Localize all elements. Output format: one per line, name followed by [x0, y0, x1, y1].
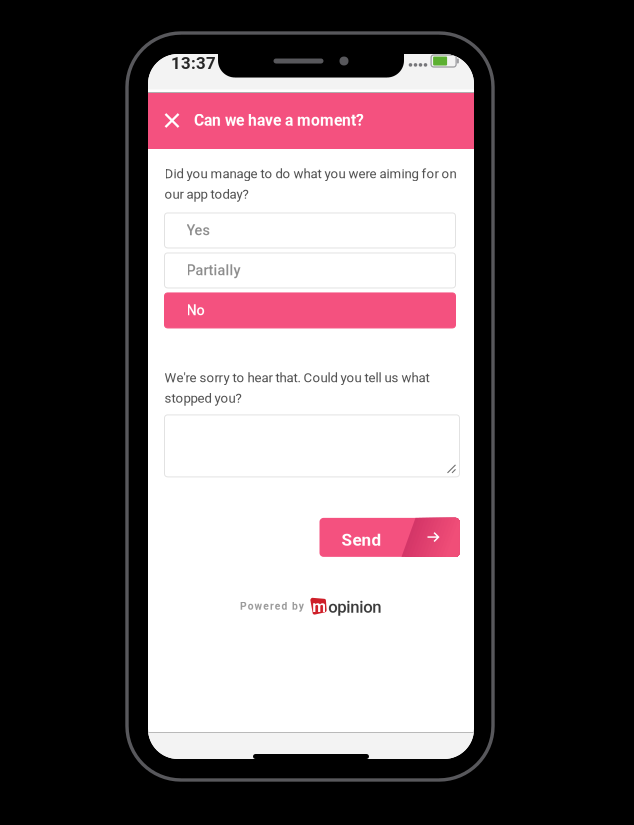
staticText: m	[312, 597, 326, 616]
staticText: opinion	[328, 597, 381, 617]
button[interactable]: Close	[150, 92, 194, 149]
staticText: Yes	[186, 222, 209, 239]
staticText: Powered by	[240, 600, 304, 612]
staticText: Did you manage to do what you were aimin…	[164, 166, 456, 202]
staticText: No	[186, 302, 204, 319]
staticText: 13:37	[171, 53, 216, 73]
button[interactable]: Yes	[164, 213, 455, 248]
button[interactable]: Partially	[164, 253, 455, 288]
staticText: Partially	[186, 262, 240, 279]
staticText: Send	[341, 530, 381, 550]
button[interactable]: Send	[319, 518, 459, 557]
staticText: Can we have a moment?	[194, 111, 364, 130]
staticText: We're sorry to hear that. Could you tell…	[164, 370, 429, 406]
button[interactable]: No	[164, 293, 455, 328]
